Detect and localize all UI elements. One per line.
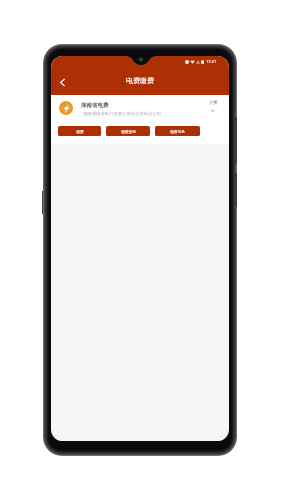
staticText: 缴费 <box>76 129 84 134</box>
staticText: 元 <box>211 109 215 113</box>
staticText: 缴费记录 <box>170 129 185 134</box>
button[interactable]: 缴费 <box>58 126 101 136</box>
button[interactable]: 缴费记录 <box>155 126 200 136</box>
staticText: 缴费查询 <box>121 129 136 134</box>
staticText: 湖南省电费 <box>81 102 109 109</box>
staticText: 欠费 <box>209 100 218 105</box>
button[interactable]: Back <box>51 69 73 95</box>
staticText: 电费缴费 <box>126 76 154 85</box>
staticText: 国网湖南省电力有限公司长沙供电分公司 <box>83 111 162 116</box>
staticText: 17:21 <box>206 59 217 64</box>
button[interactable]: 缴费查询 <box>106 126 150 136</box>
